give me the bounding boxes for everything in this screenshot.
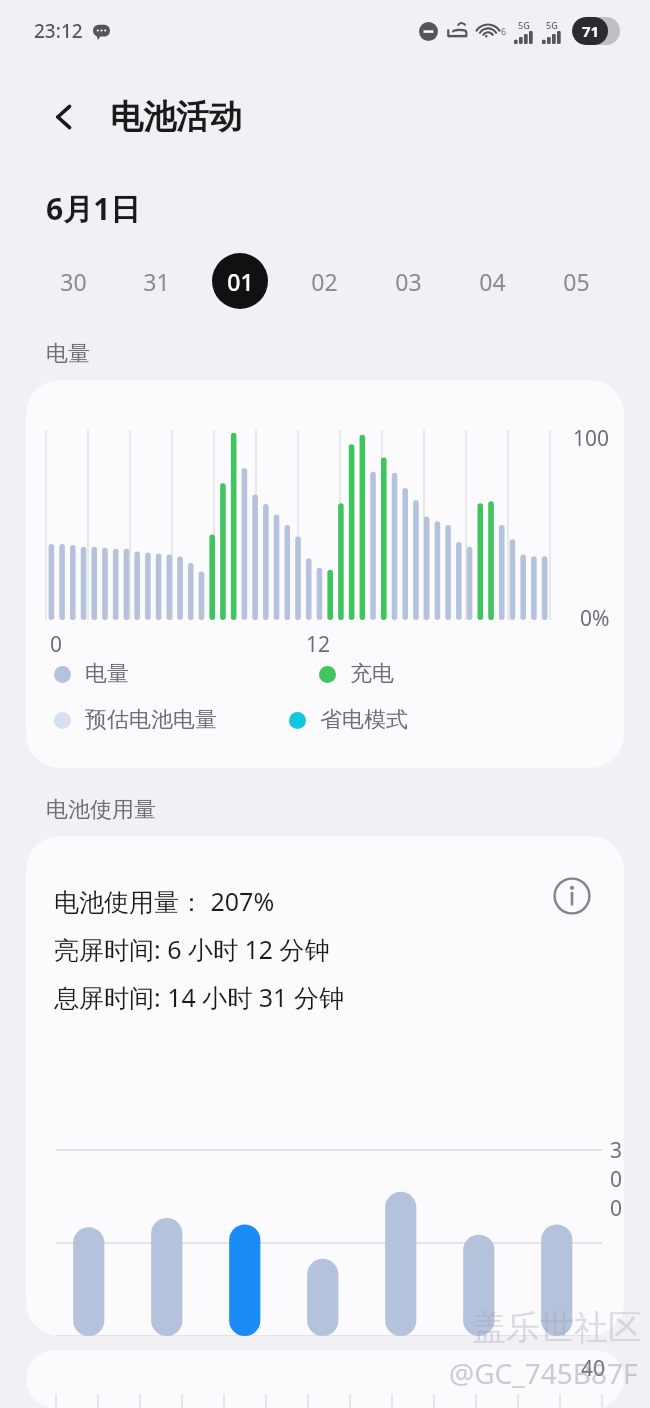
staticText: 0% (580, 604, 610, 633)
staticText: 亮屏时间: 6 小时 12 分钟 (54, 932, 330, 966)
staticText: 电池活动 (110, 96, 242, 138)
staticText: 30 (60, 266, 87, 297)
staticText: 71 (582, 21, 600, 41)
staticText: 盖乐世社区 (472, 1306, 642, 1349)
staticText: 0 (50, 630, 63, 659)
button[interactable]: 02 (282, 244, 366, 318)
button[interactable]: 30 (32, 244, 115, 318)
button[interactable]: Back (38, 91, 90, 143)
staticText: 02 (311, 266, 338, 297)
button[interactable]: 31 (115, 244, 198, 318)
staticText: 23:12 (34, 18, 83, 44)
button[interactable]: Info (546, 870, 598, 922)
staticText: 充电 (350, 660, 394, 688)
staticText: 电池使用量 (46, 796, 156, 824)
staticText: 05 (563, 266, 590, 297)
button[interactable]: 03 (366, 244, 450, 318)
staticText: 电量 (85, 660, 129, 688)
staticText: 40 (581, 1354, 606, 1383)
staticText: 12 (306, 630, 331, 659)
staticText: 6月1日 (46, 188, 141, 229)
staticText: 03 (395, 266, 422, 297)
button[interactable]: 05 (534, 244, 618, 318)
staticText: 04 (479, 266, 506, 297)
staticText: @GC_745B87F (449, 1354, 638, 1392)
staticText: 电量 (46, 340, 90, 368)
button[interactable]: 省电模式 (289, 706, 408, 734)
staticText: 300 (610, 1136, 624, 1223)
staticText: 息屏时间: 14 小时 31 分钟 (54, 980, 344, 1014)
staticText: 5G (546, 19, 558, 31)
staticText: 5G (518, 19, 530, 31)
button[interactable]: 充电 (319, 660, 394, 688)
staticText: 6 (501, 25, 507, 37)
staticText: 01 (227, 266, 254, 297)
staticText: 省电模式 (320, 706, 408, 734)
staticText: 100 (573, 424, 610, 453)
staticText: 电池使用量： 207% (54, 884, 275, 918)
button[interactable]: 01 (198, 244, 282, 318)
button[interactable]: 100 (26, 380, 624, 768)
button[interactable]: 04 (450, 244, 534, 318)
button[interactable]: 预估电池电量 (54, 706, 217, 734)
button[interactable]: 电量 (54, 660, 129, 688)
button[interactable]: 40 (26, 1350, 624, 1408)
button[interactable]: 电池使用量： 207% (26, 836, 624, 1336)
staticText: 预估电池电量 (85, 706, 217, 734)
staticText: 31 (143, 266, 170, 297)
